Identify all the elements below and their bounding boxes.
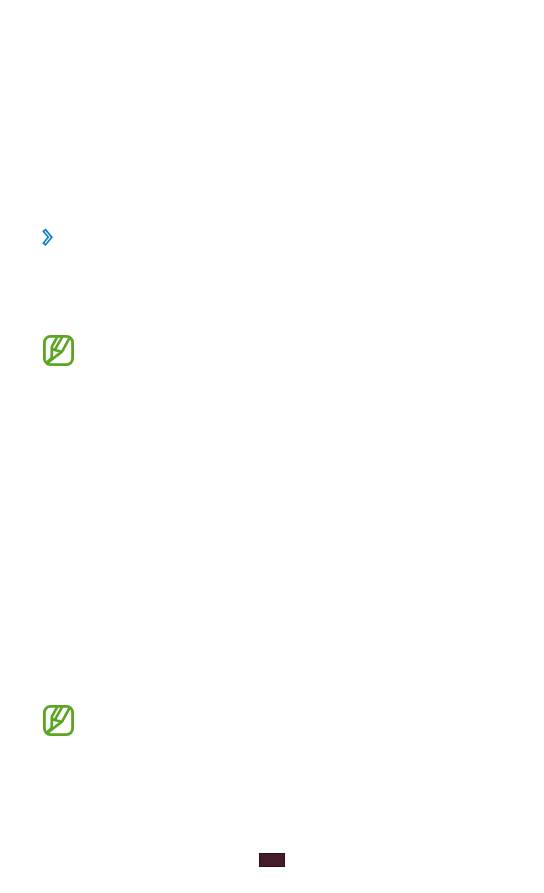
button[interactable]: Notes	[43, 335, 74, 366]
button[interactable]: Notes	[43, 705, 74, 736]
button[interactable]: Next	[41, 228, 55, 247]
